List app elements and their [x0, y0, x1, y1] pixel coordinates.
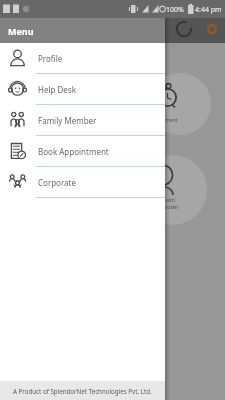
staticText: 100%	[166, 5, 184, 15]
staticText: Family Member	[38, 115, 97, 126]
staticText: Book Appointment	[38, 146, 109, 157]
staticText: alth	[166, 197, 175, 204]
button[interactable]: Profile	[0, 43, 165, 74]
staticText: A Product of SplendorNet Technologies Pv…	[13, 387, 152, 395]
button[interactable]: Corporate	[0, 167, 165, 198]
staticText: Help Desk	[38, 84, 76, 95]
staticText: Corporate	[38, 177, 76, 188]
button[interactable]: Book Appointment	[0, 136, 165, 167]
staticText: ment	[165, 117, 178, 124]
staticText: 4:44 pm	[195, 5, 222, 15]
staticText: Menu	[8, 25, 34, 37]
button[interactable]: Family Member	[0, 105, 165, 136]
staticText: ovider	[164, 204, 179, 211]
button[interactable]: Help Desk	[0, 74, 165, 105]
staticText: Profile	[38, 53, 63, 64]
